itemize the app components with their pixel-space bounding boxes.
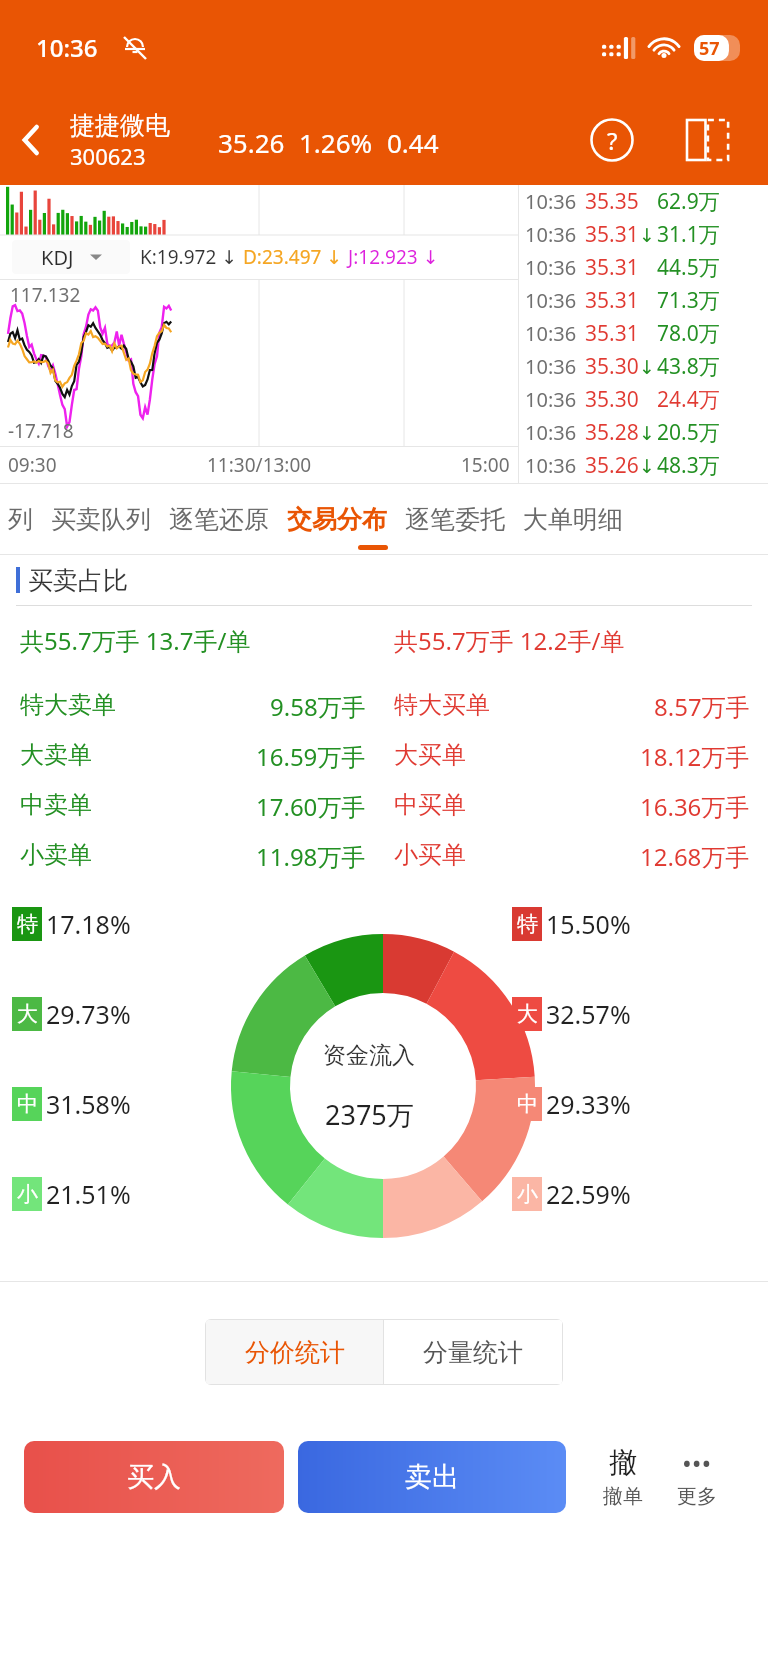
- staticText: 12.68万手: [640, 840, 750, 873]
- button[interactable]: Compare: [676, 109, 738, 171]
- staticText: 资金流入: [323, 1041, 415, 1070]
- staticText: 大买单: [394, 740, 466, 770]
- staticText: 35.30: [585, 385, 639, 414]
- staticText: 32.57%: [546, 997, 631, 1031]
- staticText: 特大买单: [394, 690, 490, 720]
- button[interactable]: 分价统计: [206, 1320, 383, 1384]
- staticText: 撤: [609, 1445, 637, 1480]
- staticText: ↓: [639, 224, 655, 246]
- button[interactable]: Back: [0, 108, 64, 172]
- staticText: ↓: [639, 422, 655, 444]
- button[interactable]: 分量统计: [384, 1320, 562, 1384]
- staticText: 48.3万: [657, 451, 720, 480]
- staticText: 35.30: [585, 352, 639, 381]
- staticText: 78.0万: [657, 319, 720, 348]
- button[interactable]: 交易分布: [287, 484, 387, 554]
- staticText: ↓: [639, 356, 655, 378]
- staticText: 10:36: [525, 419, 577, 446]
- staticText: 更多: [677, 1484, 717, 1509]
- staticText: 10:36: [525, 386, 577, 413]
- button[interactable]: 卖出: [298, 1441, 566, 1513]
- staticText: 10:36: [525, 452, 577, 479]
- staticText: 35.26: [585, 451, 639, 480]
- staticText: 18.12万手: [640, 740, 750, 773]
- staticText: 8.57万手: [654, 690, 750, 723]
- staticText: 31.58%: [46, 1087, 131, 1121]
- staticText: 交易分布: [287, 504, 387, 535]
- staticText: 特: [517, 911, 538, 937]
- staticText: 71.3万: [657, 286, 720, 315]
- staticText: 特: [17, 911, 38, 937]
- staticText: 24.4万: [657, 385, 720, 414]
- staticText: 300623: [70, 141, 146, 171]
- staticText: 大卖单: [20, 740, 92, 770]
- staticText: 大: [17, 1001, 38, 1027]
- staticText: 35.31: [585, 253, 639, 282]
- button[interactable]: Help: [584, 112, 640, 168]
- button[interactable]: 撤: [586, 1445, 660, 1509]
- staticText: 撤单: [603, 1484, 643, 1509]
- button[interactable]: 列: [8, 484, 33, 554]
- button[interactable]: KDJ: [12, 240, 130, 274]
- staticText: 11.98万手: [256, 840, 366, 873]
- staticText: 09:30: [8, 452, 57, 478]
- staticText: 20.5万: [657, 418, 720, 447]
- staticText: 1.26%: [299, 125, 373, 160]
- staticText: 捷捷微电: [70, 110, 170, 141]
- button[interactable]: 买入: [24, 1441, 284, 1513]
- staticText: 29.33%: [546, 1087, 631, 1121]
- button[interactable]: 大单明细: [523, 484, 623, 554]
- staticText: -17.718: [8, 418, 74, 444]
- staticText: 10:36: [525, 320, 577, 347]
- staticText: 10:36: [525, 188, 577, 215]
- staticText: 35.31: [585, 319, 639, 348]
- staticText: 小买单: [394, 840, 466, 870]
- staticText: 15:00: [461, 452, 510, 478]
- staticText: 大: [517, 1001, 538, 1027]
- staticText: KDJ: [41, 244, 74, 271]
- staticText: 57: [699, 36, 720, 61]
- staticText: 10:36: [525, 287, 577, 314]
- staticText: 16.36万手: [640, 790, 750, 823]
- staticText: 17.18%: [46, 907, 131, 941]
- staticText: 大单明细: [523, 504, 623, 535]
- staticText: 小: [17, 1181, 38, 1207]
- staticText: 买卖占比: [28, 565, 128, 596]
- staticText: 21.51%: [46, 1177, 131, 1211]
- staticText: 31.1万: [657, 220, 720, 249]
- staticText: 2375万: [325, 1096, 414, 1133]
- staticText: 35.31: [585, 286, 639, 315]
- staticText: 29.73%: [46, 997, 131, 1031]
- staticText: 43.8万: [657, 352, 720, 381]
- button[interactable]: •••: [660, 1445, 734, 1509]
- staticText: 买入: [127, 1460, 181, 1494]
- staticText: •••: [682, 1445, 712, 1480]
- staticText: 中卖单: [20, 790, 92, 820]
- staticText: 10:36: [525, 221, 577, 248]
- staticText: 分价统计: [245, 1337, 345, 1368]
- staticText: 小卖单: [20, 840, 92, 870]
- staticText: J:12.923 ↓: [348, 244, 439, 270]
- staticText: 62.9万: [657, 187, 720, 216]
- staticText: 中: [517, 1091, 538, 1117]
- staticText: 小: [517, 1181, 538, 1207]
- staticText: 15.50%: [546, 907, 631, 941]
- staticText: 逐笔委托: [405, 504, 505, 535]
- staticText: 44.5万: [657, 253, 720, 282]
- staticText: ?: [607, 124, 618, 157]
- staticText: 分量统计: [423, 1337, 523, 1368]
- staticText: 35.31: [585, 220, 639, 249]
- staticText: 中: [17, 1091, 38, 1117]
- button[interactable]: 逐笔还原: [169, 484, 269, 554]
- staticText: ↓: [639, 455, 655, 477]
- staticText: 9.58万手: [270, 690, 366, 723]
- staticText: 卖出: [405, 1460, 459, 1494]
- staticText: K:19.972 ↓: [140, 244, 243, 270]
- button[interactable]: 逐笔委托: [405, 484, 505, 554]
- staticText: 中买单: [394, 790, 466, 820]
- button[interactable]: 买卖队列: [51, 484, 151, 554]
- staticText: 共55.7万手 12.2手/单: [394, 624, 625, 657]
- staticText: 35.28: [585, 418, 639, 447]
- staticText: 共55.7万手 13.7手/单: [20, 624, 251, 657]
- staticText: 35.35: [585, 187, 639, 216]
